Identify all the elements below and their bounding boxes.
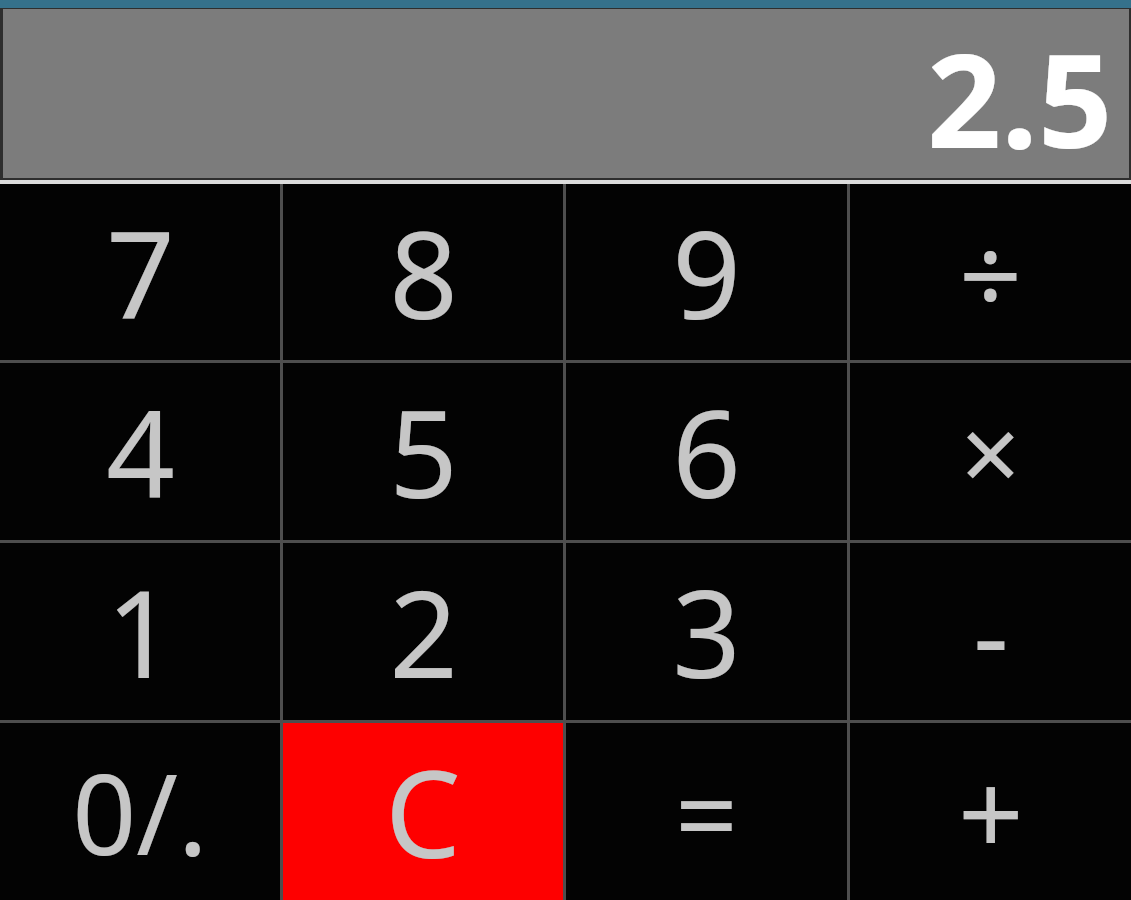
staticText: 2 (389, 550, 458, 713)
staticText: 2.5 (927, 9, 1113, 172)
staticText: 4 (106, 370, 175, 533)
staticText: = (675, 737, 738, 887)
staticText: × (960, 380, 1021, 523)
button[interactable]: C (283, 723, 563, 900)
button[interactable]: = (566, 723, 847, 900)
staticText: 6 (672, 370, 741, 533)
button[interactable]: 9 (566, 184, 847, 360)
button[interactable]: 2 (283, 543, 563, 720)
button[interactable]: 5 (283, 363, 563, 540)
button[interactable]: 7 (0, 184, 280, 360)
button[interactable]: 3 (566, 543, 847, 720)
button[interactable]: 0/. (0, 723, 280, 900)
button[interactable]: × (850, 363, 1131, 540)
staticText: - (973, 557, 1009, 707)
button[interactable]: - (850, 543, 1131, 720)
button[interactable]: 1 (0, 543, 280, 720)
staticText: 0/. (72, 735, 208, 888)
staticText: 5 (389, 370, 458, 533)
staticText: 3 (672, 550, 741, 713)
staticText: 7 (106, 191, 175, 354)
button[interactable]: + (850, 723, 1131, 900)
staticText: + (958, 733, 1024, 890)
staticText: C (385, 730, 461, 893)
button[interactable]: ÷ (850, 184, 1131, 360)
staticText: 1 (106, 550, 175, 713)
staticText: ÷ (959, 197, 1022, 347)
button[interactable]: 6 (566, 363, 847, 540)
button[interactable]: 4 (0, 363, 280, 540)
button[interactable]: 8 (283, 184, 563, 360)
staticText: 9 (672, 191, 741, 354)
staticText: 8 (389, 191, 458, 354)
